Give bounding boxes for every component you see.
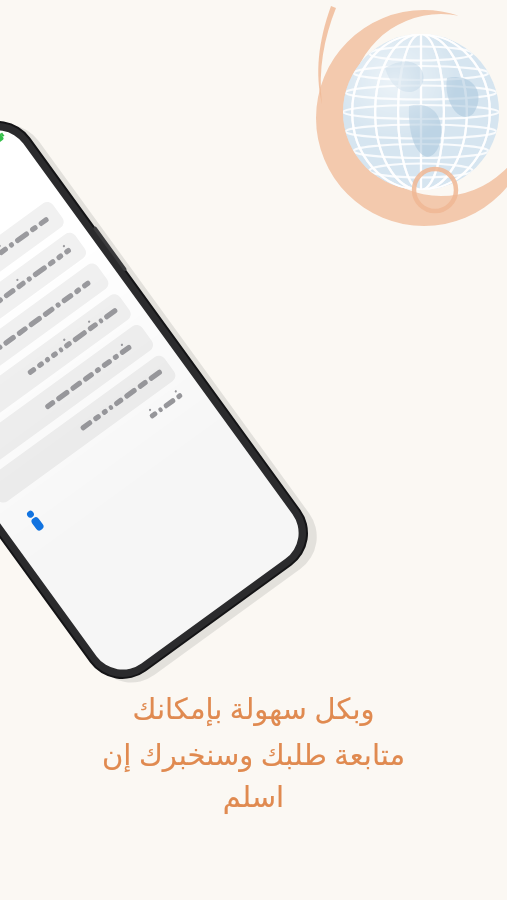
staticText: متابعة طلبك وسنخبرك إن (33, 734, 474, 773)
staticText: اسلم (33, 780, 474, 814)
staticText: وبكل سهولة بإمكانك (33, 688, 474, 727)
button[interactable]: وبكل سهولة بإمكانك (33, 688, 474, 814)
